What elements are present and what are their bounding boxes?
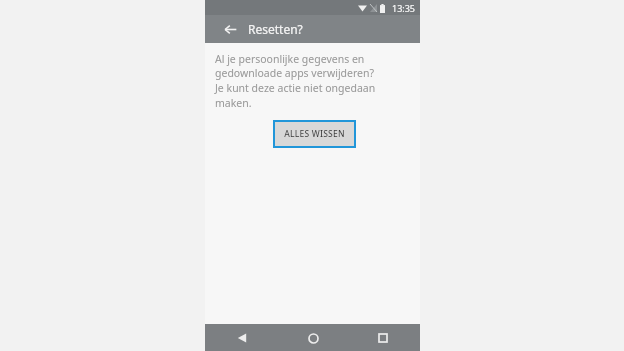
- button[interactable]: Back: [219, 18, 241, 40]
- staticText: Resetten?: [248, 21, 303, 37]
- button[interactable]: ALLES WISSEN: [273, 120, 356, 148]
- staticText: ALLES WISSEN: [284, 128, 345, 140]
- staticText: Al je persoonlijke gegevens en gedownloa…: [215, 52, 376, 110]
- button[interactable]: Recent apps: [370, 325, 396, 351]
- staticText: 13:35: [392, 2, 416, 14]
- button[interactable]: Back: [229, 325, 255, 351]
- button[interactable]: Home: [300, 325, 326, 351]
